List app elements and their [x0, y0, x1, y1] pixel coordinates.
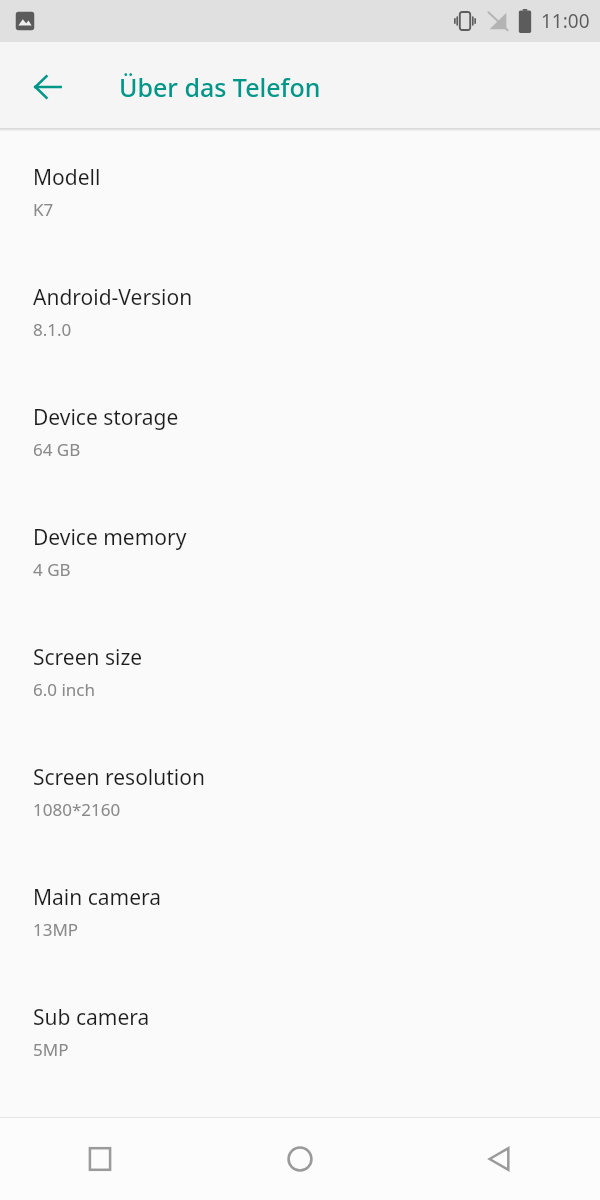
staticText: 6.0 inch — [33, 678, 95, 701]
button[interactable]: Recent apps — [0, 1118, 200, 1200]
staticText: Modell — [33, 163, 101, 192]
staticText: Main camera — [33, 883, 162, 912]
staticText: 13MP — [33, 918, 79, 941]
button[interactable]: Android-Version — [0, 269, 600, 389]
button[interactable]: Modell — [0, 149, 600, 269]
staticText: Screen size — [33, 643, 143, 672]
staticText: Screen resolution — [33, 763, 205, 792]
staticText: 64 GB — [33, 438, 81, 461]
staticText: 1080*2160 — [33, 798, 121, 821]
button[interactable]: Sub camera — [0, 989, 600, 1109]
button[interactable]: Screen size — [0, 629, 600, 749]
button[interactable]: Device memory — [0, 509, 600, 629]
staticText: Device storage — [33, 403, 179, 432]
staticText: 5MP — [33, 1038, 69, 1061]
button[interactable]: Device storage — [0, 389, 600, 509]
staticText: Device memory — [33, 523, 187, 552]
staticText: Sub camera — [33, 1003, 150, 1032]
button[interactable]: Screen resolution — [0, 749, 600, 869]
button[interactable]: Home — [200, 1118, 400, 1200]
staticText: 11:00 — [541, 8, 590, 34]
staticText: Über das Telefon — [119, 70, 321, 104]
button[interactable]: Main camera — [0, 869, 600, 989]
button[interactable]: Back — [400, 1118, 600, 1200]
button[interactable]: Back — [18, 57, 78, 117]
staticText: Android-Version — [33, 283, 193, 312]
staticText: 8.1.0 — [33, 318, 72, 341]
staticText: K7 — [33, 198, 54, 221]
staticText: 4 GB — [33, 558, 71, 581]
